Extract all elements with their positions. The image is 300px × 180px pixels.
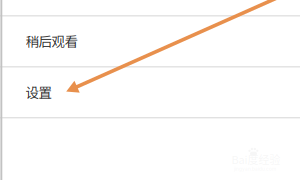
button[interactable]: 稍后观看 <box>0 16 300 66</box>
staticText: 稍后观看 <box>26 31 78 51</box>
staticText: 设置 <box>26 82 52 102</box>
button[interactable]: 设置 <box>0 67 300 117</box>
